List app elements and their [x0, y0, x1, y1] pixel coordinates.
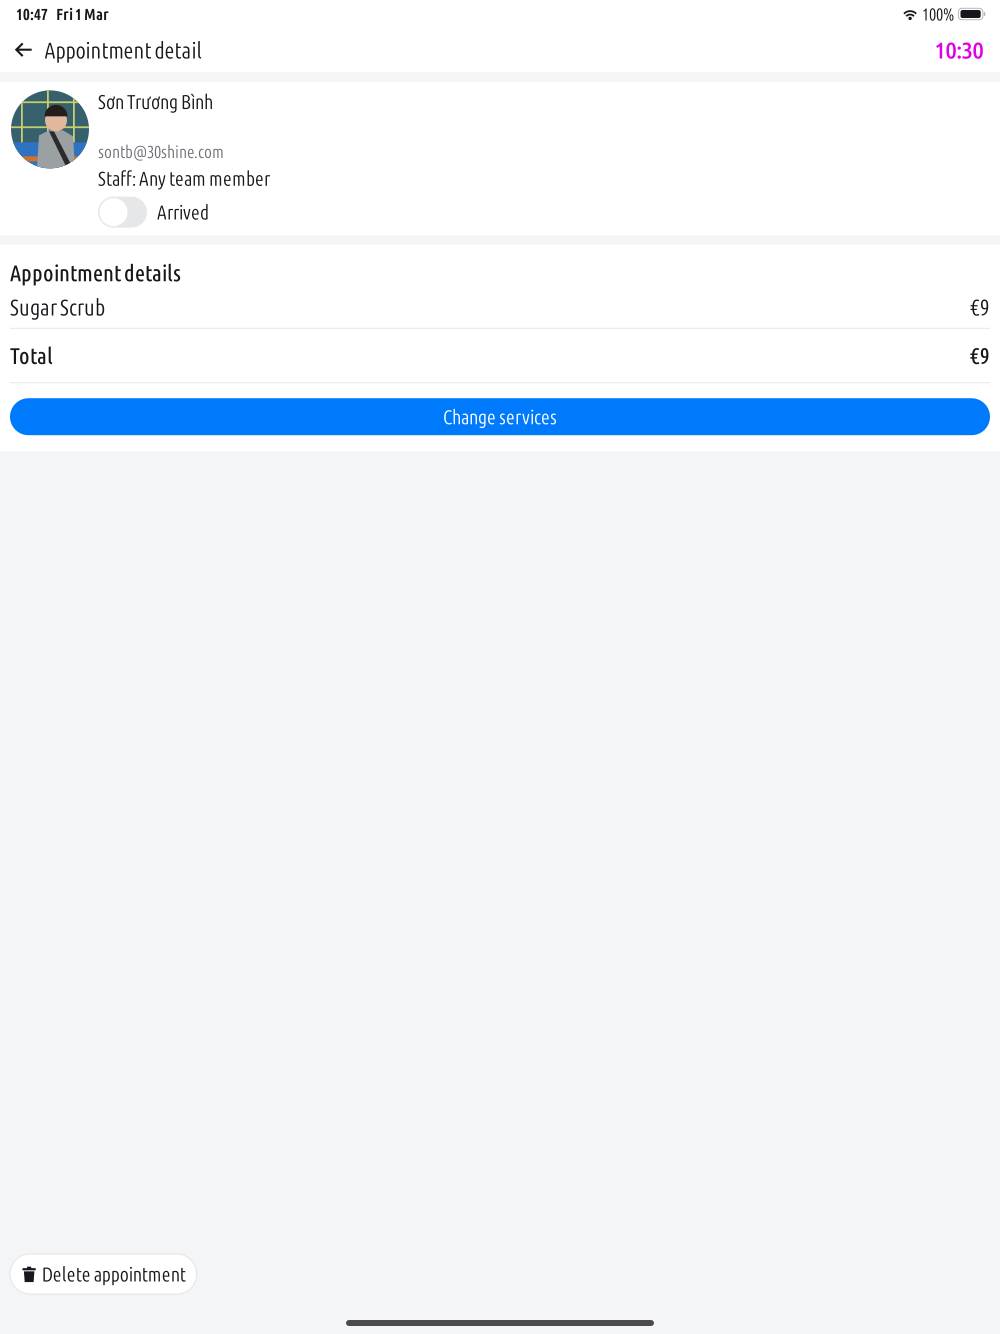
staticText: Arrived — [157, 201, 209, 223]
staticText: 100% — [922, 4, 954, 24]
staticText: Sugar Scrub — [10, 294, 105, 320]
staticText: €9 — [970, 294, 990, 320]
staticText: Fri 1 Mar — [56, 5, 109, 23]
staticText: Total — [10, 343, 53, 368]
staticText: sontb@30shine.com — [98, 142, 224, 161]
staticText: Appointment details — [10, 260, 181, 285]
button[interactable]: Change services — [10, 398, 990, 435]
staticText: Appointment detail — [44, 37, 201, 63]
button[interactable]: Appointment detail — [0, 28, 211, 72]
staticText: 10:47 — [16, 5, 48, 23]
staticText: Staff: Any team member — [98, 167, 270, 190]
button[interactable]: 10:30 — [922, 28, 995, 72]
staticText: €9 — [970, 343, 990, 368]
staticText: Sơn Trương Bình — [98, 90, 213, 113]
staticText: 10:30 — [934, 37, 983, 63]
staticText: Change services — [443, 405, 557, 428]
staticText: Delete appointment — [42, 1263, 186, 1285]
button[interactable]: Arrived — [98, 197, 147, 228]
button[interactable]: Delete appointment — [10, 1254, 197, 1294]
